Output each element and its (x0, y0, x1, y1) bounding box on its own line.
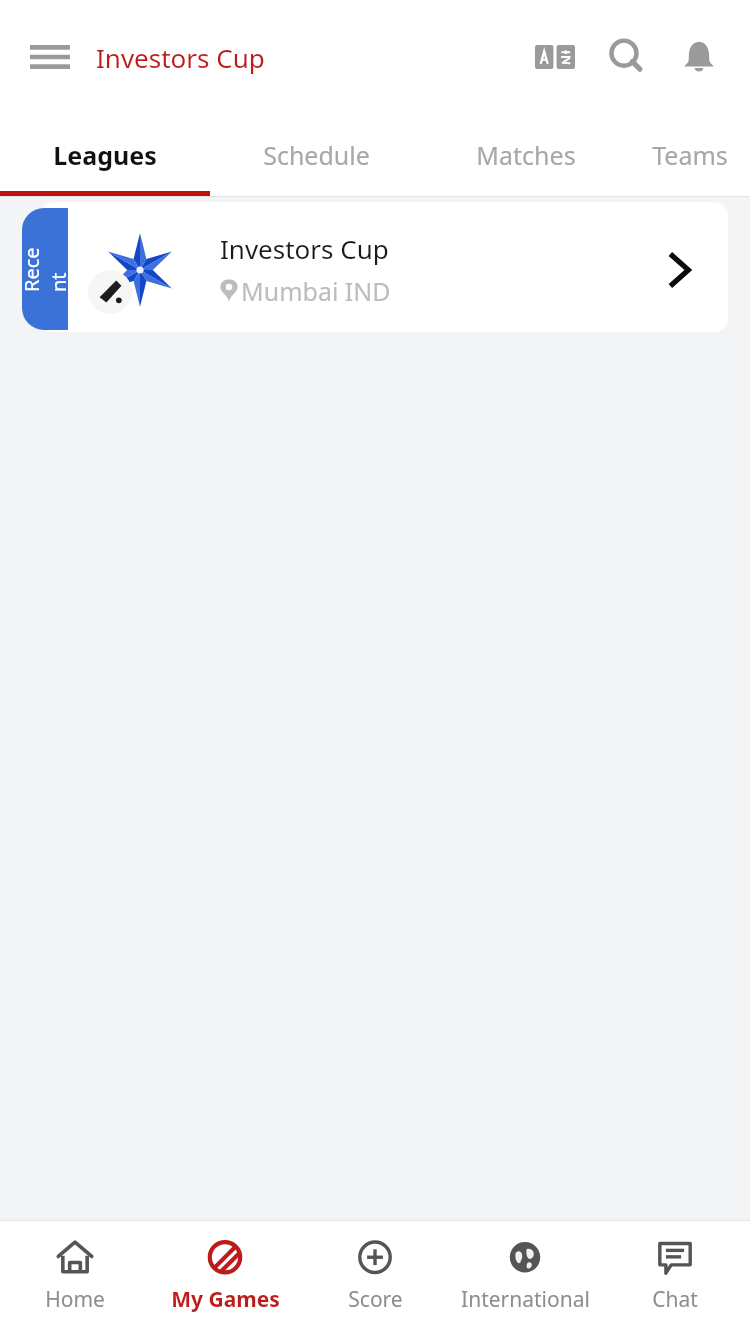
staticText: Matches (476, 138, 576, 172)
staticText: Investors Cup (220, 231, 389, 266)
button[interactable]: Score (300, 1221, 450, 1334)
staticText: Score (348, 1285, 403, 1314)
button[interactable]: Notifications (670, 28, 728, 86)
staticText: Chat (652, 1285, 698, 1314)
button[interactable]: Matches (422, 113, 630, 197)
staticText: My Games (171, 1285, 280, 1314)
button[interactable]: Leagues (0, 113, 210, 197)
button[interactable]: Home (0, 1221, 150, 1334)
button[interactable]: Search (598, 28, 656, 86)
button[interactable]: Teams (630, 113, 750, 197)
staticText: Mumbai IND (241, 274, 391, 308)
staticText: Investors Cup (96, 40, 265, 75)
staticText: Teams (652, 138, 728, 172)
button[interactable]: International (450, 1221, 600, 1334)
staticText: Leagues (53, 138, 157, 172)
button[interactable]: Open league (658, 248, 702, 292)
staticText: International (461, 1285, 590, 1314)
button[interactable]: Schedule (210, 113, 422, 197)
staticText: Recent (22, 246, 68, 292)
button[interactable]: Chat (600, 1221, 750, 1334)
button[interactable]: Translate (526, 28, 584, 86)
button[interactable]: My Games (150, 1221, 300, 1334)
button[interactable] (40, 202, 728, 332)
staticText: Home (45, 1285, 105, 1314)
staticText: Schedule (263, 138, 370, 172)
button[interactable]: Menu (22, 29, 78, 85)
